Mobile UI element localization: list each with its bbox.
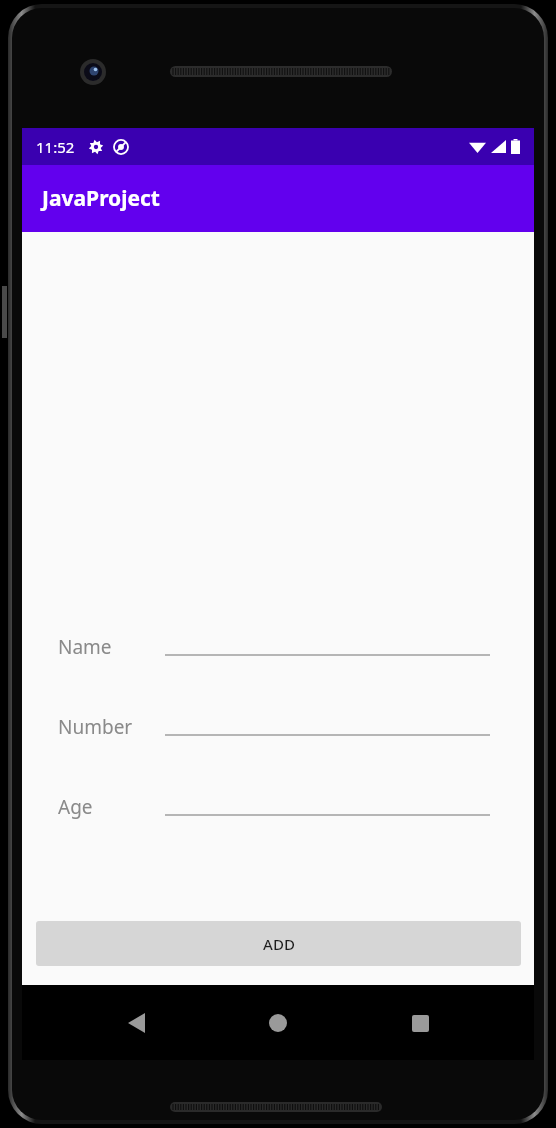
button[interactable]: Home (250, 995, 306, 1051)
staticText: 11:52 (36, 137, 75, 157)
button[interactable]: Recent apps (392, 995, 448, 1051)
staticText: Number (58, 714, 133, 740)
staticText: Age (58, 794, 93, 820)
staticText: Name (58, 634, 112, 660)
button[interactable]: Name (22, 624, 534, 670)
button[interactable]: Back (108, 995, 164, 1051)
button[interactable]: ADD (36, 921, 521, 966)
button[interactable]: Age (22, 784, 534, 830)
staticText: ADD (263, 934, 295, 954)
button[interactable]: Number (22, 704, 534, 750)
staticText: JavaProject (42, 184, 160, 213)
